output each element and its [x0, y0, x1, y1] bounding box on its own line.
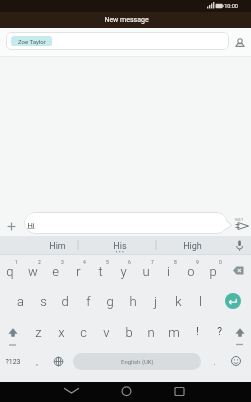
staticText: j	[154, 294, 157, 309]
button[interactable]: s	[29, 292, 57, 310]
button[interactable]: x	[47, 323, 75, 341]
staticText: h	[129, 294, 137, 309]
button[interactable]	[166, 382, 193, 402]
staticText: l	[199, 294, 202, 309]
button[interactable]: w	[19, 262, 47, 280]
button[interactable]: d	[51, 292, 79, 310]
staticText: His	[113, 241, 127, 252]
staticText: English (UK)	[121, 358, 154, 365]
staticText: 6	[128, 259, 131, 265]
button[interactable]: ?	[205, 323, 233, 341]
button[interactable]: j	[141, 292, 169, 310]
button[interactable]	[5, 325, 21, 340]
button[interactable]	[24, 212, 228, 234]
button[interactable]: k	[164, 292, 192, 310]
staticText: q	[6, 264, 14, 279]
button[interactable]: !	[183, 323, 211, 341]
staticText: e	[52, 264, 59, 279]
staticText: High	[183, 241, 202, 252]
button[interactable]: English (UK)	[73, 353, 201, 370]
button[interactable]: h	[119, 292, 147, 310]
staticText: New message	[104, 16, 149, 24]
staticText: 1	[15, 259, 18, 265]
staticText: i	[167, 264, 170, 279]
button[interactable]	[234, 220, 250, 232]
button[interactable]	[232, 325, 248, 340]
staticText: d	[61, 294, 69, 309]
staticText: u	[142, 264, 150, 279]
staticText: 9	[196, 259, 199, 265]
staticText: 4	[83, 259, 86, 265]
staticText: 7	[151, 259, 154, 265]
button[interactable]: u	[132, 262, 160, 280]
button[interactable]: g	[96, 292, 124, 310]
staticText: ,	[36, 358, 38, 367]
button[interactable]: t	[86, 262, 114, 280]
button[interactable]: e	[41, 262, 69, 280]
button[interactable]	[52, 355, 65, 368]
button[interactable]: v	[92, 323, 120, 341]
button[interactable]	[230, 355, 242, 367]
staticText: 3	[61, 259, 64, 265]
staticText: Zoe Taylor	[18, 38, 46, 45]
button[interactable]	[225, 293, 241, 309]
staticText: g	[106, 294, 114, 309]
button[interactable]	[6, 32, 229, 50]
button[interactable]: p	[199, 262, 227, 280]
button[interactable]: c	[69, 323, 97, 341]
staticText: .	[213, 358, 216, 367]
button[interactable]: b	[115, 323, 143, 341]
button[interactable]: ?123	[0, 353, 27, 371]
staticText: o	[187, 264, 195, 279]
staticText: v	[103, 325, 110, 340]
button[interactable]	[233, 239, 246, 252]
button[interactable]: z	[24, 323, 52, 341]
button[interactable]: a	[6, 292, 34, 310]
staticText: b	[125, 325, 133, 340]
button[interactable]: Zoe Taylor	[11, 36, 52, 46]
button[interactable]: o	[177, 262, 205, 280]
staticText: y	[120, 264, 127, 279]
staticText: ?123	[5, 358, 21, 366]
button[interactable]: ,	[23, 353, 51, 371]
staticText: k	[175, 294, 182, 309]
button[interactable]: f	[74, 292, 102, 310]
staticText: c	[80, 325, 87, 340]
staticText: t	[98, 264, 103, 279]
button[interactable]: i	[154, 262, 182, 280]
button[interactable]	[233, 35, 247, 49]
button[interactable]	[5, 220, 18, 233]
button[interactable]: His	[106, 237, 134, 255]
staticText: 8	[174, 259, 177, 265]
staticText: f	[86, 294, 91, 309]
staticText: 0	[219, 259, 222, 265]
button[interactable]	[58, 382, 85, 402]
button[interactable]: High	[178, 237, 206, 255]
staticText: 5	[106, 259, 109, 265]
staticText: a	[17, 294, 24, 309]
staticText: Hi	[27, 221, 35, 230]
staticText: !	[196, 326, 199, 338]
staticText: z	[35, 325, 42, 340]
button[interactable]: r	[64, 262, 92, 280]
staticText: r	[76, 264, 81, 279]
staticText: m	[168, 325, 180, 340]
button[interactable]	[113, 382, 140, 402]
button[interactable]: y	[109, 262, 137, 280]
button[interactable]: Him	[43, 237, 71, 255]
staticText: 2	[38, 259, 41, 265]
staticText: n	[147, 325, 155, 340]
staticText: Him	[49, 241, 66, 252]
staticText: s	[40, 294, 47, 309]
staticText: w	[28, 264, 38, 279]
button[interactable]	[230, 263, 247, 279]
button[interactable]: l	[186, 292, 214, 310]
staticText: ?	[217, 326, 222, 338]
staticText: 10:00	[224, 3, 238, 9]
button[interactable]: q	[0, 262, 24, 280]
button[interactable]: m	[160, 323, 188, 341]
staticText: p	[209, 264, 217, 279]
button[interactable]: .	[200, 353, 228, 371]
button[interactable]: n	[137, 323, 165, 341]
staticText: x	[58, 325, 65, 340]
